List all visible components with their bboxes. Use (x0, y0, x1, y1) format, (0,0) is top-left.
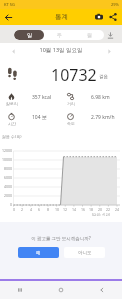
staticText: 8 (43, 207, 53, 212)
staticText: 월 (87, 32, 92, 38)
button[interactable]: 일 (14, 30, 44, 40)
button[interactable]: Home (40, 281, 81, 299)
button[interactable]: Next day (102, 44, 116, 58)
staticText: 0 (0, 202, 12, 207)
staticText: 14 (69, 207, 79, 212)
staticText: 일 (27, 32, 32, 38)
staticText: 29% (111, 2, 119, 7)
staticText: 아니오 (78, 250, 92, 256)
button[interactable]: Back (81, 281, 122, 299)
button[interactable]: Camera (92, 10, 106, 24)
staticText: 10732 (51, 64, 97, 82)
staticText: 예 (36, 250, 41, 256)
staticText: 0 (9, 207, 19, 212)
staticText: 2 (17, 207, 27, 212)
staticText: 20 (95, 207, 105, 212)
staticText: 10월 13일 일요일 (0, 46, 122, 54)
staticText: 6 (34, 207, 44, 212)
staticText: 16 (78, 207, 88, 212)
staticText: 24 (112, 207, 122, 212)
button[interactable]: Share (106, 10, 120, 24)
staticText: 6.98 km (91, 94, 110, 101)
staticText: 10 (52, 207, 62, 212)
button[interactable]: 주 (44, 30, 74, 40)
staticText: 2.79 km/h (91, 114, 115, 121)
staticText: 10000 (0, 157, 12, 162)
button[interactable]: Recents (0, 281, 40, 299)
staticText: 12 (60, 207, 70, 212)
staticText: 357 kcal (32, 94, 52, 101)
staticText: 104 분 (32, 114, 47, 121)
staticText: (단위: 시간) (92, 212, 110, 217)
staticText: 8000 (0, 166, 12, 171)
staticText: 22 (103, 207, 113, 212)
staticText: 12000 (0, 148, 12, 153)
staticText: KT 5G (4, 2, 16, 7)
button[interactable]: 아니오 (64, 247, 105, 258)
staticText: 칼로리 (6, 101, 18, 106)
button[interactable]: Back (0, 9, 16, 25)
button[interactable]: 예 (18, 247, 59, 258)
button[interactable]: 월 (74, 30, 104, 40)
staticText: 걸음 수(회) (2, 134, 22, 139)
staticText: 4000 (0, 184, 12, 189)
staticText: 이 광고를 그만 보시겠습니까? (0, 235, 122, 241)
staticText: 걸음 (99, 74, 108, 80)
staticText: 4 (26, 207, 36, 212)
staticText: 시간 (8, 121, 16, 126)
staticText: 통계 (55, 13, 68, 21)
staticText: 2000 (0, 193, 12, 198)
button[interactable]: Download (104, 29, 117, 42)
staticText: 18 (86, 207, 96, 212)
staticText: 주 (57, 32, 62, 38)
staticText: 거리 (67, 101, 75, 106)
staticText: 속도 (67, 121, 75, 126)
button[interactable]: Previous day (6, 44, 20, 58)
staticText: 6000 (0, 175, 12, 180)
